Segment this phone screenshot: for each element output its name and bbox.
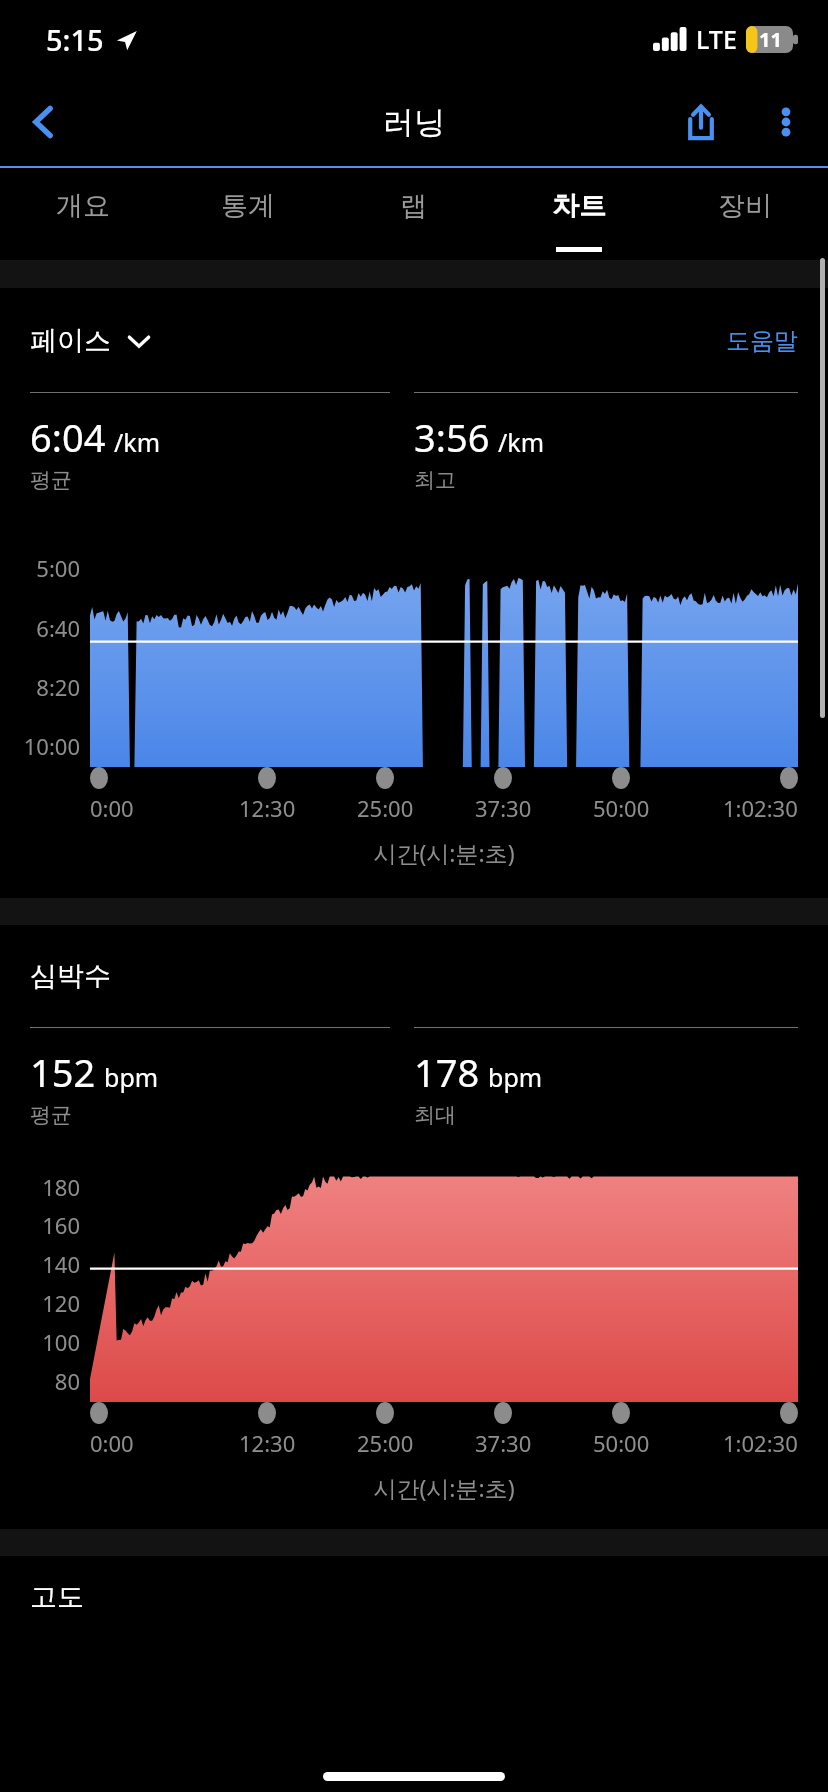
staticText: 차트 — [552, 189, 606, 223]
button[interactable]: 도움말 — [726, 326, 798, 356]
button[interactable]: 통계 — [165, 168, 330, 260]
staticText: 8:20 — [16, 672, 80, 702]
staticText: 6:04 — [30, 411, 106, 463]
staticText: 최고 — [414, 467, 456, 493]
staticText: 11 — [759, 26, 782, 53]
staticText: 37:30 — [475, 1428, 532, 1458]
staticText: 25:00 — [357, 1428, 414, 1458]
staticText: 장비 — [718, 189, 772, 223]
button[interactable]: 개요 — [0, 168, 165, 260]
staticText: 140 — [16, 1249, 80, 1279]
staticText: 3:56 — [414, 411, 490, 463]
staticText: 120 — [16, 1288, 80, 1318]
staticText: 시간(시:분:초) — [90, 1472, 798, 1503]
staticText: bpm — [488, 1060, 543, 1094]
staticText: 0:00 — [90, 1428, 134, 1458]
staticText: 160 — [16, 1210, 80, 1240]
staticText: 개요 — [56, 189, 110, 223]
staticText: 5:00 — [16, 553, 80, 583]
staticText: /km — [498, 425, 545, 459]
staticText: 25:00 — [357, 793, 414, 823]
staticText: 페이스 — [30, 324, 111, 358]
staticText: 50:00 — [593, 793, 650, 823]
staticText: 100 — [16, 1327, 80, 1357]
button[interactable]: 페이스 — [30, 324, 151, 358]
staticText: LTE — [696, 22, 737, 56]
staticText: 랩 — [400, 189, 427, 223]
staticText: 12:30 — [239, 1428, 296, 1458]
staticText: 178 — [414, 1046, 480, 1098]
staticText: bpm — [104, 1060, 159, 1094]
staticText: 러닝 — [383, 103, 445, 142]
staticText: 심박수 — [30, 959, 111, 993]
staticText: 평균 — [30, 467, 72, 493]
button[interactable]: 랩 — [330, 168, 496, 260]
staticText: 0:00 — [90, 793, 134, 823]
staticText: 12:30 — [239, 793, 296, 823]
staticText: 평균 — [30, 1102, 72, 1128]
staticText: 도움말 — [726, 326, 798, 356]
staticText: 최대 — [414, 1102, 456, 1128]
button[interactable]: Back — [0, 78, 88, 166]
button[interactable]: More options — [744, 80, 828, 164]
staticText: 80 — [16, 1366, 80, 1396]
staticText: 1:02:30 — [723, 1428, 798, 1458]
button[interactable]: 장비 — [662, 168, 828, 260]
staticText: 시간(시:분:초) — [90, 837, 798, 868]
staticText: 1:02:30 — [723, 793, 798, 823]
staticText: 152 — [30, 1046, 96, 1098]
staticText: 5:15 — [46, 20, 104, 59]
button[interactable]: 차트 — [496, 168, 662, 260]
staticText: /km — [114, 425, 161, 459]
staticText: 10:00 — [16, 731, 80, 761]
staticText: 180 — [16, 1172, 80, 1202]
staticText: 고도 — [30, 1580, 84, 1614]
staticText: 6:40 — [16, 613, 80, 643]
staticText: 50:00 — [593, 1428, 650, 1458]
staticText: 37:30 — [475, 793, 532, 823]
button[interactable]: Share — [658, 79, 744, 165]
staticText: 통계 — [221, 189, 275, 223]
